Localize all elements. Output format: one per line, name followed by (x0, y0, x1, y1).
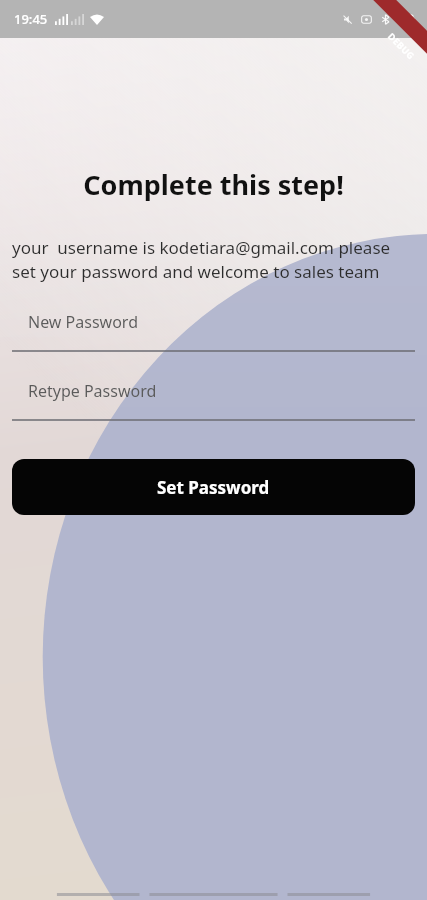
staticText: DEBUG (386, 30, 418, 62)
staticText: Retype Password (28, 380, 157, 402)
staticText: 19:45 (14, 10, 48, 28)
button[interactable]: New Password (12, 311, 415, 352)
button[interactable]: Set Password (12, 459, 415, 515)
staticText: your username is kodetiara@gmail.com ple… (12, 236, 415, 283)
staticText: Set Password (157, 476, 270, 499)
staticText: New Password (28, 311, 138, 333)
staticText: Complete this step! (0, 166, 427, 203)
button[interactable]: Retype Password (12, 380, 415, 421)
